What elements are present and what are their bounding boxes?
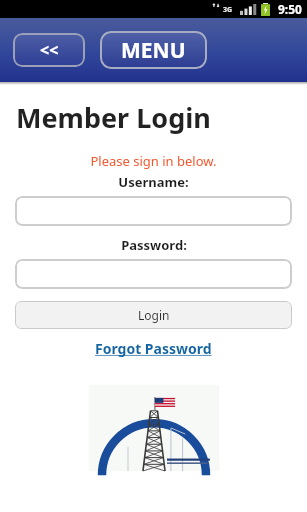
- staticText: 3G: [223, 5, 233, 15]
- button[interactable]: Login: [15, 301, 292, 329]
- staticText: 9:50: [278, 1, 302, 17]
- staticText: MENU: [121, 36, 186, 65]
- button[interactable]: MENU: [100, 31, 207, 69]
- staticText: Forgot Password: [95, 339, 212, 358]
- button[interactable]: Forgot Password: [91, 338, 216, 359]
- staticText: <<: [40, 39, 59, 61]
- staticText: Password:: [121, 236, 187, 254]
- staticText: Please sign in below.: [90, 152, 217, 170]
- button[interactable]: [15, 259, 292, 289]
- staticText: Login: [138, 307, 170, 323]
- staticText: Username:: [118, 173, 189, 191]
- staticText: Member Login: [16, 99, 307, 136]
- button[interactable]: [15, 196, 292, 226]
- button[interactable]: Back: [13, 33, 85, 67]
